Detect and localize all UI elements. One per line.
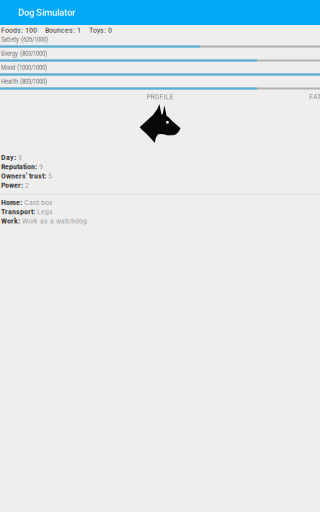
staticText: 5 [48,171,52,180]
staticText: Mood (1000/1000) [1,64,47,71]
staticText: Toys: 0 [89,25,112,35]
staticText: EAT [309,92,320,101]
staticText: Satiety (626/1000) [1,36,48,43]
staticText: Energy (803/1000) [1,50,47,57]
staticText: 9 [39,162,43,171]
staticText: Transport: [1,207,35,216]
staticText: Health (803/1000) [1,78,47,85]
staticText: Day: [1,152,16,162]
staticText: 3 [18,152,22,162]
staticText: Legs [37,207,53,216]
staticText: Work as a watchdog [22,216,87,225]
staticText: 2 [25,180,29,190]
staticText: Work: [1,216,20,225]
staticText: Dog Simulator [18,7,75,18]
staticText: Power: [1,180,23,190]
staticText: Foods: 100 [1,25,37,35]
staticText: PROFILE [146,92,173,101]
staticText: Reputation: [1,162,37,171]
button[interactable]: PROFILE [60,91,260,102]
staticText: Owners' trust: [1,171,46,180]
staticText: Bounces: 1 [45,25,81,35]
staticText: Card box [24,197,53,207]
staticText: Home: [1,197,22,207]
button[interactable]: EAT [309,91,320,102]
